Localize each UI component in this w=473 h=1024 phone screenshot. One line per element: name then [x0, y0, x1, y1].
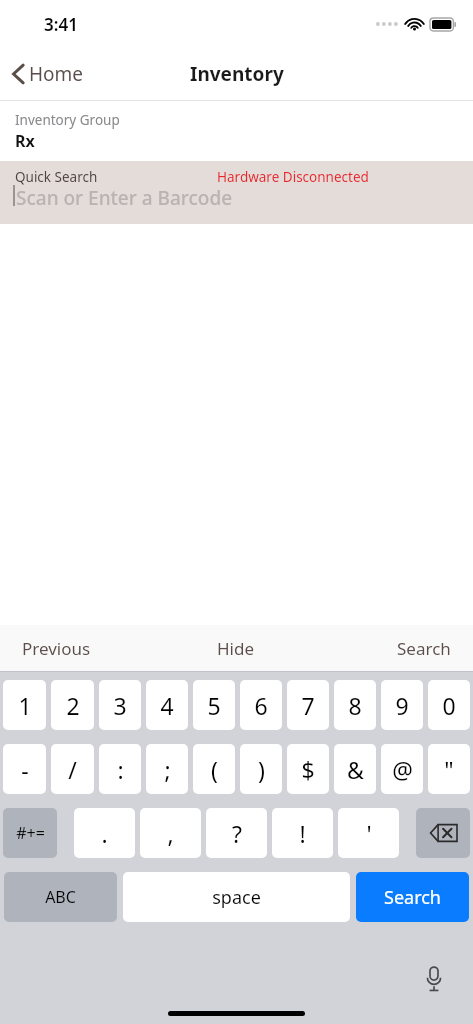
- button[interactable]: 7: [287, 680, 329, 730]
- staticText: $: [301, 754, 315, 785]
- staticText: 9: [395, 690, 409, 721]
- staticText: 7: [301, 690, 315, 721]
- button[interactable]: Hide: [157, 625, 315, 671]
- button[interactable]: ': [338, 808, 399, 858]
- button[interactable]: ?: [206, 808, 267, 858]
- button[interactable]: space: [123, 872, 350, 922]
- staticText: 4: [160, 690, 174, 721]
- staticText: Home: [29, 61, 84, 87]
- staticText: Search: [397, 637, 451, 660]
- staticText: !: [299, 818, 306, 849]
- button[interactable]: 5: [193, 680, 235, 730]
- button[interactable]: &: [334, 744, 376, 794]
- button[interactable]: 3: [99, 680, 141, 730]
- staticText: Inventory: [190, 61, 284, 87]
- staticText: 2: [66, 690, 80, 721]
- button[interactable]: ;: [146, 744, 188, 794]
- staticText: ,: [167, 818, 174, 849]
- staticText: Rx: [15, 130, 35, 152]
- staticText: #+=: [16, 822, 45, 844]
- staticText: ABC: [45, 886, 76, 908]
- button[interactable]: ABC: [4, 872, 117, 922]
- staticText: 1: [18, 690, 32, 721]
- button[interactable]: /: [51, 744, 94, 794]
- button[interactable]: :: [99, 744, 141, 794]
- staticText: ?: [232, 818, 242, 849]
- staticText: &: [347, 754, 364, 785]
- staticText: space: [212, 885, 261, 910]
- button[interactable]: 4: [146, 680, 188, 730]
- button[interactable]: #+=: [3, 808, 57, 858]
- button[interactable]: ): [240, 744, 282, 794]
- staticText: ': [366, 818, 372, 849]
- staticText: Search: [384, 885, 441, 910]
- button[interactable]: Dictate: [417, 962, 451, 996]
- staticText: ): [258, 754, 265, 785]
- button[interactable]: $: [287, 744, 329, 794]
- staticText: :: [117, 754, 124, 785]
- button[interactable]: Home: [0, 55, 94, 93]
- button[interactable]: (: [193, 744, 235, 794]
- button[interactable]: 2: [51, 680, 94, 730]
- staticText: Inventory Group: [15, 111, 120, 129]
- button[interactable]: 9: [381, 680, 423, 730]
- staticText: 3:41: [44, 13, 78, 36]
- button[interactable]: Inventory Group: [0, 101, 473, 161]
- button[interactable]: 1: [3, 680, 46, 730]
- staticText: /: [68, 754, 77, 785]
- staticText: Quick Search: [15, 168, 98, 186]
- button[interactable]: ": [428, 744, 470, 794]
- staticText: -: [21, 754, 29, 785]
- staticText: 0: [442, 690, 456, 721]
- button[interactable]: 8: [334, 680, 376, 730]
- button[interactable]: Search: [315, 625, 473, 671]
- staticText: 6: [254, 690, 268, 721]
- staticText: Scan or Enter a Barcode: [16, 185, 233, 211]
- staticText: 5: [207, 690, 221, 721]
- button[interactable]: Search: [356, 872, 469, 922]
- staticText: ;: [164, 754, 171, 785]
- staticText: .: [101, 818, 108, 849]
- staticText: Hardware Disconnected: [217, 168, 369, 186]
- staticText: Previous: [22, 637, 91, 660]
- staticText: Hide: [217, 637, 255, 660]
- staticText: @: [392, 754, 413, 785]
- staticText: (: [211, 754, 218, 785]
- button[interactable]: @: [381, 744, 423, 794]
- staticText: 3: [113, 690, 127, 721]
- button[interactable]: ,: [140, 808, 201, 858]
- button[interactable]: !: [272, 808, 333, 858]
- staticText: 8: [348, 690, 362, 721]
- button[interactable]: Previous: [0, 625, 157, 671]
- button[interactable]: Quick Search: [0, 161, 473, 224]
- button[interactable]: .: [74, 808, 135, 858]
- staticText: ": [444, 754, 454, 785]
- button[interactable]: 6: [240, 680, 282, 730]
- button[interactable]: 0: [428, 680, 470, 730]
- button[interactable]: -: [3, 744, 46, 794]
- button[interactable]: Backspace: [416, 808, 470, 858]
